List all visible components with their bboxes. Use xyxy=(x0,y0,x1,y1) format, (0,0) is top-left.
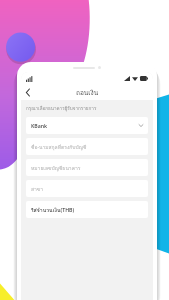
button[interactable]: ใส่จำนวนเงิน(THB) xyxy=(26,201,148,218)
staticText: กรุณาเลือกธนาคารผู้รับจากรายการ xyxy=(26,105,97,112)
button[interactable]: สาขา xyxy=(26,180,148,197)
staticText: ถอนเงิน xyxy=(76,88,99,98)
button[interactable]: Back xyxy=(21,86,34,99)
staticText: สาขา xyxy=(31,185,44,193)
button[interactable]: หมายเลขบัญชีธนาคาร xyxy=(26,159,148,176)
staticText: KBank xyxy=(31,122,139,129)
staticText: ใส่จำนวนเงิน(THB) xyxy=(31,206,75,214)
staticText: ชื่อ-นามสกุลที่ตรงกับบัญชี xyxy=(31,143,87,151)
button[interactable]: ชื่อ-นามสกุลที่ตรงกับบัญชี xyxy=(26,138,148,155)
button[interactable]: KBank xyxy=(26,117,148,134)
staticText: หมายเลขบัญชีธนาคาร xyxy=(31,164,81,172)
